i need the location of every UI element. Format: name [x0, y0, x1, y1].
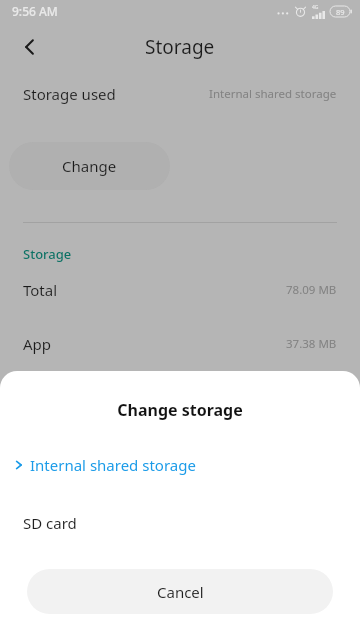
- staticText: Cancel: [157, 582, 204, 602]
- button[interactable]: Internal shared storage: [0, 448, 360, 482]
- staticText: App: [23, 334, 52, 354]
- staticText: Storage: [23, 245, 72, 263]
- button[interactable]: Cancel: [27, 569, 333, 614]
- button[interactable]: Total: [0, 273, 360, 307]
- staticText: Storage: [145, 34, 215, 60]
- staticText: SD card: [23, 513, 77, 533]
- staticText: Internal shared storage: [30, 455, 196, 475]
- staticText: Internal shared storage: [209, 86, 337, 102]
- staticText: 9:56 AM: [12, 3, 58, 19]
- staticText: Change: [62, 156, 117, 176]
- staticText: 37.38 MB: [286, 336, 337, 352]
- button[interactable]: SD card: [0, 506, 360, 540]
- staticText: 89: [336, 7, 345, 17]
- staticText: Change storage: [0, 399, 360, 421]
- button[interactable]: App: [0, 327, 360, 361]
- staticText: Total: [23, 280, 58, 300]
- button[interactable]: Storage used: [0, 72, 360, 116]
- staticText: 4G: [312, 4, 319, 11]
- button[interactable]: Change: [9, 142, 170, 190]
- button[interactable]: Back: [6, 23, 54, 71]
- staticText: Storage used: [23, 84, 116, 104]
- staticText: 78.09 MB: [286, 282, 337, 298]
